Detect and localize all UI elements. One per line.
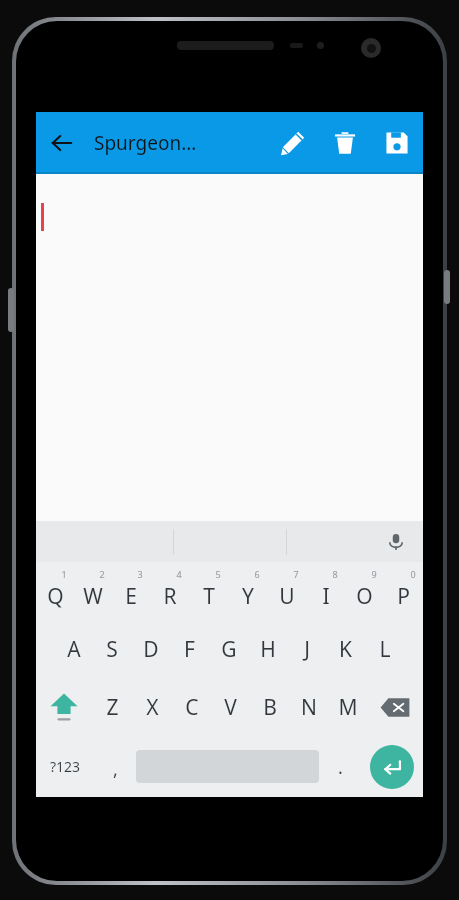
staticText: T bbox=[203, 582, 215, 611]
button[interactable]: C bbox=[172, 678, 211, 736]
staticText: Y bbox=[242, 582, 254, 611]
staticText: 5 bbox=[215, 568, 221, 580]
button[interactable]: L bbox=[365, 620, 404, 678]
button[interactable]: 7 bbox=[267, 562, 306, 620]
staticText: , bbox=[113, 757, 118, 782]
button[interactable]: Shift bbox=[36, 678, 92, 736]
button[interactable]: Back bbox=[36, 117, 88, 169]
staticText: Q bbox=[47, 582, 64, 611]
button[interactable]: D bbox=[131, 620, 170, 678]
staticText: I bbox=[322, 582, 330, 611]
button[interactable]: N bbox=[289, 678, 328, 736]
staticText: 1 bbox=[61, 568, 67, 580]
staticText: V bbox=[224, 693, 237, 722]
button[interactable]: 0 bbox=[384, 562, 423, 620]
button[interactable]: 2 bbox=[74, 562, 112, 620]
staticText: 0 bbox=[410, 568, 416, 580]
staticText: M bbox=[338, 693, 358, 722]
button[interactable]: Z bbox=[92, 678, 132, 736]
button[interactable]: S bbox=[93, 620, 131, 678]
button[interactable]: F bbox=[170, 620, 209, 678]
button[interactable]: 1 bbox=[36, 562, 74, 620]
button[interactable]: . bbox=[319, 736, 361, 797]
staticText: H bbox=[260, 635, 276, 664]
button[interactable]: K bbox=[326, 620, 365, 678]
staticText: N bbox=[301, 693, 317, 722]
button[interactable]: Delete bbox=[319, 117, 371, 169]
staticText: C bbox=[185, 693, 199, 722]
staticText: L bbox=[379, 635, 391, 664]
button[interactable]: ?123 bbox=[36, 736, 94, 797]
button[interactable]: 8 bbox=[306, 562, 345, 620]
button[interactable]: 6 bbox=[228, 562, 267, 620]
button[interactable]: 4 bbox=[150, 562, 189, 620]
staticText: R bbox=[163, 582, 177, 611]
staticText: J bbox=[304, 635, 310, 664]
button[interactable]: X bbox=[132, 678, 172, 736]
button[interactable]: Backspace bbox=[367, 678, 423, 736]
staticText: X bbox=[146, 693, 159, 722]
staticText: 4 bbox=[176, 568, 182, 580]
button[interactable]: H bbox=[248, 620, 287, 678]
button[interactable]: M bbox=[328, 678, 367, 736]
staticText: B bbox=[263, 693, 277, 722]
button[interactable]: 9 bbox=[345, 562, 384, 620]
staticText: Spurgeon... bbox=[94, 130, 197, 156]
staticText: E bbox=[125, 582, 137, 611]
staticText: 8 bbox=[332, 568, 338, 580]
staticText: K bbox=[339, 635, 352, 664]
staticText: W bbox=[83, 582, 103, 611]
button[interactable]: J bbox=[287, 620, 326, 678]
button[interactable]: Voice input bbox=[379, 525, 413, 559]
staticText: 7 bbox=[293, 568, 299, 580]
staticText: U bbox=[279, 582, 295, 611]
staticText: ?123 bbox=[50, 757, 81, 776]
button[interactable]: Enter bbox=[361, 736, 423, 797]
staticText: O bbox=[356, 582, 373, 611]
staticText: 6 bbox=[254, 568, 260, 580]
staticText: 3 bbox=[137, 568, 143, 580]
button[interactable]: V bbox=[211, 678, 250, 736]
button[interactable]: G bbox=[209, 620, 248, 678]
staticText: D bbox=[143, 635, 159, 664]
staticText: P bbox=[397, 582, 410, 611]
staticText: F bbox=[184, 635, 195, 664]
staticText: S bbox=[106, 635, 118, 664]
button[interactable]: Save bbox=[371, 117, 423, 169]
staticText: G bbox=[221, 635, 237, 664]
button[interactable]: 5 bbox=[189, 562, 228, 620]
staticText: . bbox=[338, 755, 343, 780]
button[interactable]: Edit bbox=[267, 117, 319, 169]
staticText: 9 bbox=[371, 568, 377, 580]
staticText: A bbox=[67, 635, 81, 664]
button[interactable]: B bbox=[250, 678, 289, 736]
staticText: 2 bbox=[99, 568, 105, 580]
button[interactable]: A bbox=[55, 620, 93, 678]
staticText: Z bbox=[106, 693, 119, 722]
button[interactable]: 3 bbox=[112, 562, 150, 620]
button[interactable]: , bbox=[94, 736, 136, 797]
